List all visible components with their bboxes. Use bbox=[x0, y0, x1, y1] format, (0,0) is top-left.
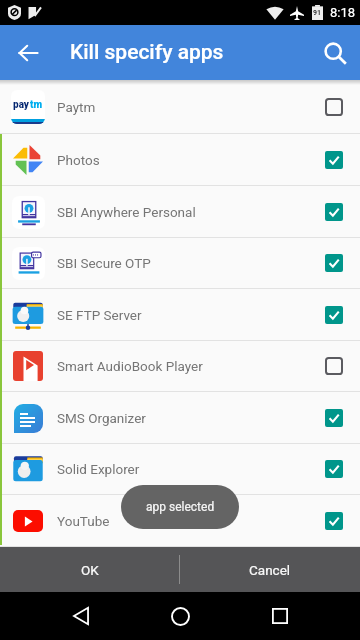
button[interactable]: SBI Anywhere Personal bbox=[0, 186, 360, 238]
staticText: SMS Organizer bbox=[57, 410, 146, 426]
staticText: YouTube bbox=[57, 513, 110, 529]
button[interactable]: SMS Organizer bbox=[0, 392, 360, 444]
button[interactable]: OK bbox=[0, 547, 179, 592]
button[interactable]: Back bbox=[57, 592, 105, 640]
button[interactable]: SE FTP Server bbox=[0, 289, 360, 341]
staticText: Kill specify apps bbox=[70, 40, 224, 65]
button[interactable]: pay bbox=[0, 80, 360, 134]
staticText: Smart AudioBook Player bbox=[57, 358, 203, 374]
button[interactable]: SBI Secure OTP bbox=[0, 238, 360, 289]
staticText: Photos bbox=[57, 152, 100, 168]
staticText: Solid Explorer bbox=[57, 461, 140, 477]
staticText: SBI Secure OTP bbox=[57, 255, 151, 271]
button[interactable]: Back bbox=[8, 33, 48, 73]
button[interactable]: Solid Explorer bbox=[0, 444, 360, 495]
staticText: 8:18 bbox=[330, 5, 356, 20]
button[interactable]: Home bbox=[156, 592, 204, 640]
button[interactable]: Cancel bbox=[180, 547, 360, 592]
staticText: Cancel bbox=[249, 562, 291, 578]
staticText: tm bbox=[30, 99, 43, 111]
staticText: SE FTP Server bbox=[57, 307, 142, 323]
button[interactable]: Smart AudioBook Player bbox=[0, 341, 360, 392]
button[interactable]: Recents bbox=[256, 592, 304, 640]
staticText: app selected bbox=[146, 500, 215, 514]
staticText: pay bbox=[13, 99, 30, 111]
staticText: Paytm bbox=[57, 99, 96, 115]
staticText: 91 bbox=[313, 9, 322, 17]
staticText: OK bbox=[81, 562, 99, 578]
button[interactable]: YouTube bbox=[0, 495, 360, 547]
button[interactable]: Photos bbox=[0, 134, 360, 186]
button[interactable]: Search bbox=[314, 32, 356, 74]
staticText: SBI Anywhere Personal bbox=[57, 204, 196, 220]
